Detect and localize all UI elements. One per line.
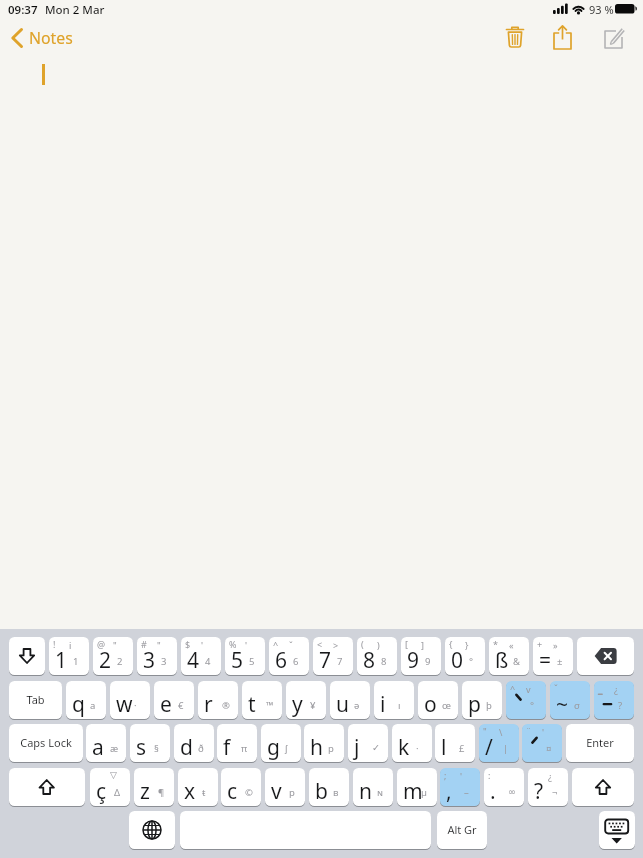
- staticText: σ: [574, 699, 580, 712]
- button[interactable]: [500, 22, 530, 52]
- button[interactable]: w: [110, 681, 150, 719]
- button[interactable]: [599, 811, 635, 849]
- button[interactable]: /: [479, 724, 519, 762]
- button[interactable]: a: [86, 724, 126, 762]
- button[interactable]: u: [330, 681, 370, 719]
- button[interactable]: 4: [181, 637, 221, 675]
- staticText: ^: [510, 682, 516, 694]
- button[interactable]: e: [154, 681, 194, 719]
- button[interactable]: ß: [489, 637, 529, 675]
- button[interactable]: r: [198, 681, 238, 719]
- button[interactable]: g: [261, 724, 301, 762]
- staticText: ·: [134, 699, 137, 712]
- button[interactable]: 7: [313, 637, 353, 675]
- staticText: ▽: [110, 770, 117, 780]
- button[interactable]: 9: [401, 637, 441, 675]
- staticText: ?: [618, 699, 623, 712]
- button[interactable]: 6: [269, 637, 309, 675]
- button[interactable]: [577, 637, 634, 675]
- button[interactable]: ,: [440, 768, 480, 806]
- staticText: z: [140, 777, 150, 806]
- button[interactable]: 8: [357, 637, 397, 675]
- button[interactable]: j: [348, 724, 388, 762]
- button[interactable]: ¿: [594, 681, 634, 719]
- staticText: 8: [381, 655, 387, 668]
- staticText: Δ: [114, 786, 121, 799]
- staticText: ˇ: [554, 682, 558, 694]
- button[interactable]: [548, 21, 578, 52]
- button[interactable]: 2: [93, 637, 133, 675]
- button[interactable]: l: [435, 724, 475, 762]
- staticText: {: [449, 638, 453, 650]
- button[interactable]: i: [374, 681, 414, 719]
- button[interactable]: v: [265, 768, 305, 806]
- button[interactable]: f: [217, 724, 257, 762]
- button[interactable]: ç: [90, 768, 130, 806]
- staticText: 4: [205, 655, 211, 668]
- staticText: π: [241, 742, 248, 755]
- button[interactable]: 5: [225, 637, 265, 675]
- staticText: œ: [442, 699, 451, 712]
- staticText: 1: [55, 646, 68, 675]
- button[interactable]: [598, 23, 628, 52]
- button[interactable]: y: [286, 681, 326, 719]
- staticText: 3: [143, 646, 156, 675]
- button[interactable]: m: [397, 768, 437, 806]
- button[interactable]: =: [533, 637, 573, 675]
- button[interactable]: Notes: [8, 24, 78, 52]
- button[interactable]: ?: [528, 768, 568, 806]
- staticText: 6: [275, 646, 288, 675]
- button[interactable]: Alt Gr: [437, 811, 487, 849]
- button[interactable]: Enter: [566, 724, 634, 762]
- button[interactable]: 3: [137, 637, 177, 675]
- staticText: 9: [407, 646, 420, 675]
- button[interactable]: c: [221, 768, 261, 806]
- staticText: ": [483, 725, 487, 737]
- button[interactable]: [572, 768, 634, 806]
- button[interactable]: n: [353, 768, 393, 806]
- staticText: |: [503, 742, 509, 755]
- button[interactable]: z: [134, 768, 174, 806]
- staticText: ]: [421, 639, 424, 651]
- staticText: !: [53, 638, 56, 650]
- staticText: þ: [486, 699, 492, 712]
- button[interactable]: 0: [445, 637, 485, 675]
- button[interactable]: h: [304, 724, 344, 762]
- button[interactable]: o: [418, 681, 458, 719]
- button[interactable]: t: [242, 681, 282, 719]
- button[interactable]: b: [309, 768, 349, 806]
- staticText: x: [184, 777, 196, 806]
- button[interactable]: [180, 811, 431, 849]
- button[interactable]: ^: [506, 681, 546, 719]
- staticText: i: [380, 690, 386, 719]
- button[interactable]: Tab: [9, 681, 62, 719]
- button[interactable]: k: [392, 724, 432, 762]
- staticText: ß: [495, 646, 509, 675]
- button[interactable]: ~: [550, 681, 590, 719]
- staticText: e: [160, 690, 172, 719]
- button[interactable]: [9, 768, 85, 806]
- staticText: €: [178, 699, 184, 712]
- button[interactable]: x: [178, 768, 218, 806]
- button[interactable]: p: [462, 681, 502, 719]
- staticText: y: [292, 690, 303, 719]
- staticText: 3: [161, 655, 167, 668]
- button[interactable]: s: [130, 724, 170, 762]
- button[interactable]: 1: [49, 637, 89, 675]
- button[interactable]: Caps Lock: [9, 724, 83, 762]
- staticText: o: [424, 690, 437, 719]
- staticText: ŧ: [202, 786, 206, 799]
- staticText: c: [227, 777, 238, 806]
- button[interactable]: .: [484, 768, 524, 806]
- button[interactable]: q: [66, 681, 106, 719]
- staticText: :: [488, 769, 491, 781]
- button[interactable]: [129, 811, 175, 849]
- staticText: ¬: [552, 786, 558, 799]
- staticText: ©: [245, 786, 253, 799]
- staticText: ®: [222, 699, 230, 712]
- button[interactable]: [9, 637, 45, 675]
- staticText: g: [267, 733, 280, 762]
- staticText: »: [553, 639, 558, 651]
- button[interactable]: d: [174, 724, 214, 762]
- button[interactable]: ¨: [522, 724, 562, 762]
